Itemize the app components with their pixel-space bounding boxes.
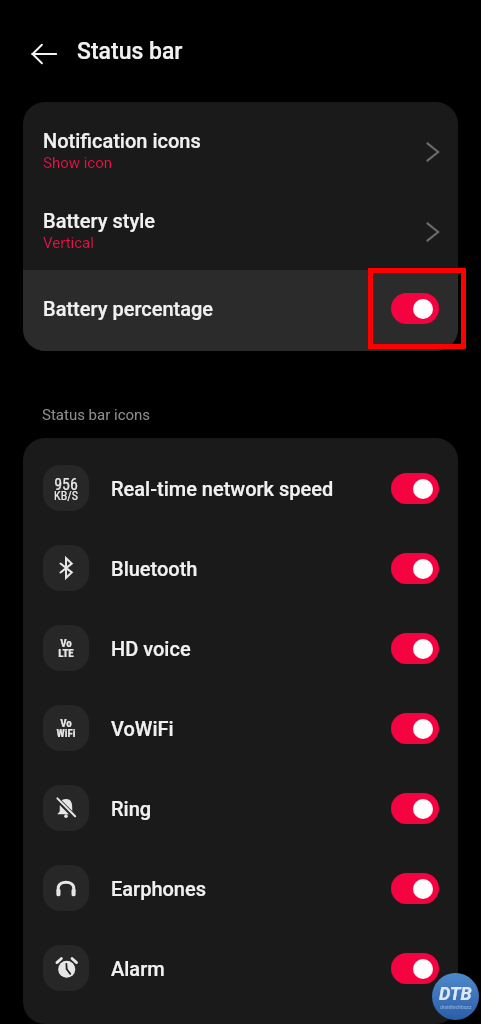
staticText: Battery percentage bbox=[43, 297, 391, 320]
button[interactable]: Alarm bbox=[23, 928, 458, 1008]
staticText: DTB bbox=[439, 983, 472, 1004]
button[interactable]: Notification icons bbox=[23, 110, 458, 190]
staticText: Notification icons bbox=[43, 129, 201, 152]
button[interactable]: Vo bbox=[23, 608, 458, 688]
button[interactable]: Alarm toggle bbox=[391, 953, 439, 984]
button[interactable]: Battery percentage toggle bbox=[391, 293, 439, 324]
button[interactable]: Back bbox=[22, 32, 66, 76]
staticText: Show icon bbox=[43, 154, 113, 172]
staticText: Real-time network speed bbox=[111, 477, 391, 500]
button[interactable]: Battery style bbox=[23, 190, 458, 270]
button[interactable]: Bluetooth toggle bbox=[391, 553, 439, 584]
staticText: 956 bbox=[54, 475, 78, 494]
button[interactable]: Vo bbox=[23, 688, 458, 768]
staticText: HD voice bbox=[111, 637, 391, 660]
staticText: Bluetooth bbox=[111, 557, 391, 580]
button[interactable]: Battery percentage bbox=[23, 270, 458, 351]
staticText: droidtechbuzz bbox=[440, 1004, 472, 1010]
staticText: Ring bbox=[111, 797, 391, 820]
button[interactable]: Bluetooth bbox=[23, 528, 458, 608]
button[interactable]: HD voice toggle bbox=[391, 633, 439, 664]
staticText: WiFi bbox=[56, 727, 76, 740]
staticText: VoWiFi bbox=[111, 717, 391, 740]
staticText: Alarm bbox=[111, 957, 391, 980]
button[interactable]: VoWiFi toggle bbox=[391, 713, 439, 744]
button[interactable]: Ring bbox=[23, 768, 458, 848]
staticText: Status bar icons bbox=[42, 406, 151, 424]
staticText: Vertical bbox=[43, 234, 94, 252]
staticText: Vo bbox=[60, 717, 72, 730]
staticText: Status bar bbox=[77, 38, 183, 65]
staticText: Battery style bbox=[43, 209, 156, 232]
button[interactable]: Real-time network speed toggle bbox=[391, 473, 439, 504]
staticText: KB/S bbox=[54, 489, 78, 503]
button[interactable]: 956 bbox=[23, 448, 458, 528]
button[interactable]: Earphones toggle bbox=[391, 873, 439, 904]
staticText: Vo bbox=[60, 637, 72, 650]
button[interactable]: Ring toggle bbox=[391, 793, 439, 824]
staticText: Earphones bbox=[111, 877, 391, 900]
button[interactable]: Earphones bbox=[23, 848, 458, 928]
staticText: LTE bbox=[58, 647, 74, 660]
